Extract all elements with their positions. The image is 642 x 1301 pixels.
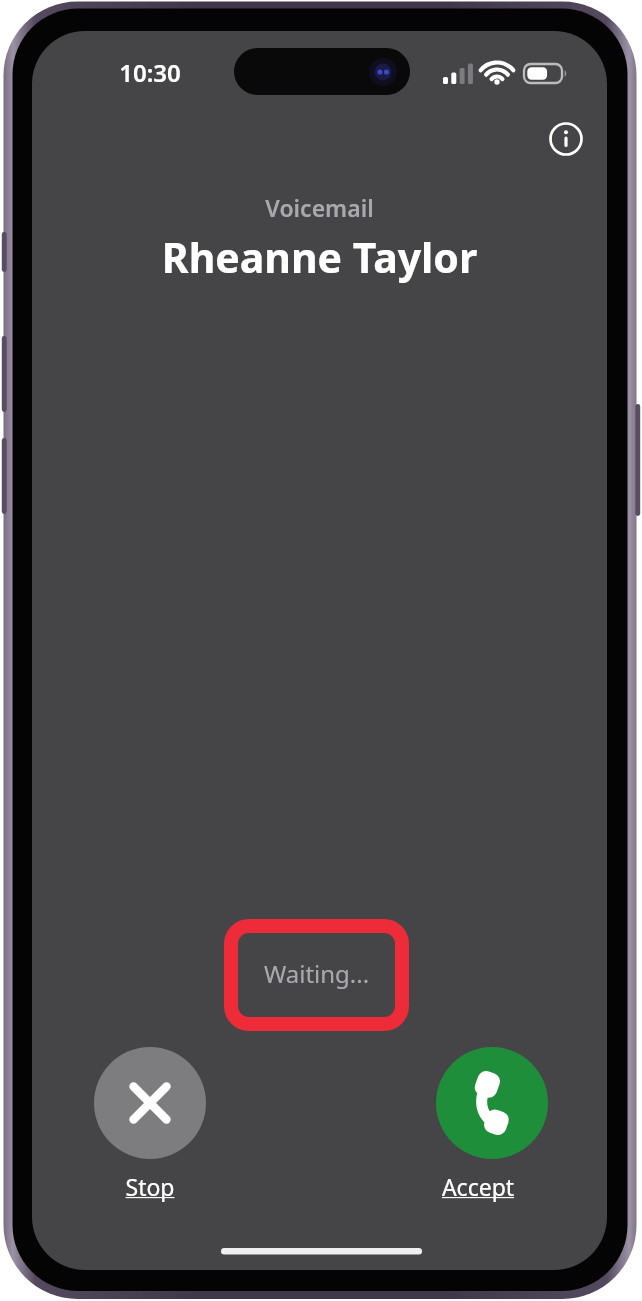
staticText: Stop xyxy=(94,1171,206,1203)
button[interactable]: Stop xyxy=(94,1047,206,1205)
button[interactable]: Accept call xyxy=(436,1047,548,1205)
staticText: Accept xyxy=(422,1171,534,1203)
staticText: 10:30 xyxy=(105,56,195,88)
staticText: Rheanne Taylor xyxy=(32,229,607,285)
button[interactable]: Info xyxy=(544,117,588,161)
staticText: Waiting... xyxy=(224,957,409,991)
staticText: Voicemail xyxy=(32,192,607,224)
